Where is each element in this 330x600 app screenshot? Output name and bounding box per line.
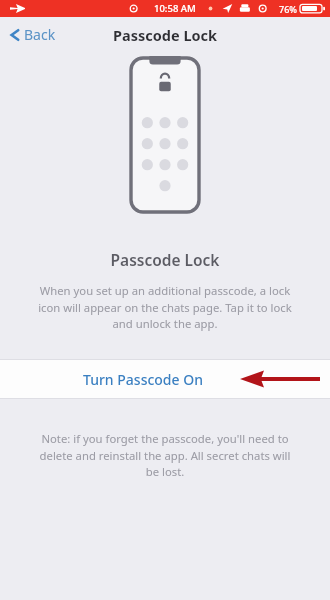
other: Annotation arrow pointing to Turn Passco…: [240, 366, 320, 392]
staticText: Turn Passcode On: [83, 370, 203, 389]
button[interactable]: Back: [4, 20, 62, 49]
staticText: 10:58 AM: [154, 2, 196, 15]
staticText: When you set up an additional passcode, …: [16, 283, 314, 331]
staticText: Passcode Lock: [0, 249, 330, 270]
staticText: Back: [24, 25, 56, 44]
button[interactable]: Turn Passcode On: [0, 359, 330, 399]
staticText: Note: if you forget the passcode, you'll…: [16, 431, 314, 479]
staticText: Passcode Lock: [113, 25, 218, 45]
staticText: 76%: [279, 3, 297, 15]
